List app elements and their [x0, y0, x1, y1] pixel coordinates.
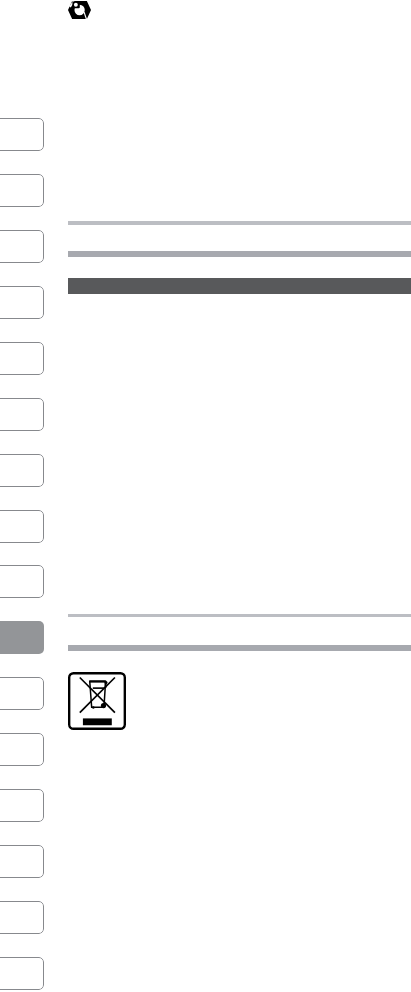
button[interactable] — [0, 174, 44, 207]
button[interactable] — [0, 454, 44, 487]
button[interactable] — [0, 677, 44, 710]
button[interactable] — [0, 342, 44, 375]
button[interactable] — [0, 957, 44, 990]
other: Logo — [68, 1, 91, 19]
button[interactable] — [0, 789, 44, 822]
button[interactable] — [0, 621, 44, 654]
button[interactable] — [0, 286, 44, 319]
button[interactable] — [0, 510, 44, 543]
button[interactable] — [0, 733, 44, 766]
button[interactable] — [0, 398, 44, 431]
button[interactable] — [0, 118, 44, 151]
button[interactable] — [0, 901, 44, 934]
button[interactable] — [0, 565, 44, 598]
button[interactable] — [0, 230, 44, 263]
button[interactable] — [0, 845, 44, 878]
other: WEEE disposal symbol — [68, 672, 126, 730]
